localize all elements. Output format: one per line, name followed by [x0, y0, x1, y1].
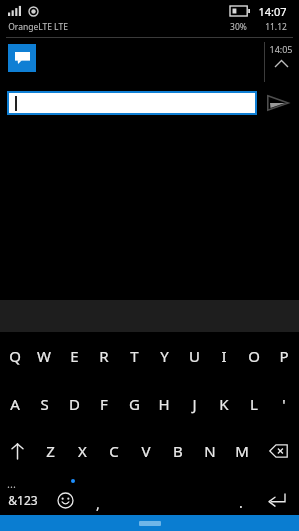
staticText: V	[141, 441, 151, 461]
button[interactable]: Q	[0, 332, 29, 380]
staticText: ,	[96, 494, 100, 513]
button[interactable]: R	[89, 332, 119, 380]
button[interactable]: H	[149, 380, 179, 428]
staticText: A	[10, 394, 20, 414]
staticText: OrangeLTE LTE	[8, 21, 68, 33]
staticText: R	[99, 346, 109, 366]
staticText: I	[221, 346, 227, 366]
staticText: K	[219, 394, 229, 414]
staticText: ...	[7, 476, 16, 491]
staticText: Y	[160, 346, 169, 366]
button[interactable]: V	[130, 428, 162, 473]
staticText: 14:07	[258, 4, 287, 19]
staticText: M	[235, 441, 249, 461]
staticText: T	[130, 346, 139, 366]
button[interactable]	[7, 91, 257, 115]
staticText: F	[100, 394, 108, 414]
button[interactable]: D	[59, 380, 89, 428]
staticText: U	[189, 346, 200, 366]
button[interactable]: Hide keyboard	[139, 521, 161, 526]
button[interactable]: Expand	[269, 43, 293, 67]
button[interactable]: S	[29, 380, 59, 428]
button[interactable]: X	[66, 428, 98, 473]
staticText: G	[129, 394, 140, 414]
button[interactable]: U	[179, 332, 209, 380]
button[interactable]: Backspace	[258, 428, 299, 473]
staticText: .	[239, 493, 243, 512]
staticText: 14:05	[269, 43, 293, 55]
button[interactable]: I	[209, 332, 239, 380]
button[interactable]: '	[269, 380, 299, 428]
button[interactable]: O	[239, 332, 269, 380]
button[interactable]: &123	[0, 485, 46, 515]
staticText: Z	[46, 441, 55, 461]
button[interactable]: G	[119, 380, 149, 428]
button[interactable]: Contact	[8, 44, 36, 72]
button[interactable]: K	[209, 380, 239, 428]
button[interactable]: .	[227, 485, 255, 515]
staticText: B	[173, 441, 183, 461]
button[interactable]: F	[89, 380, 119, 428]
staticText: P	[279, 346, 289, 366]
button[interactable]: Emoji	[46, 485, 84, 515]
staticText: E	[70, 346, 79, 366]
staticText: 11.12	[265, 21, 287, 33]
button[interactable]: Shift	[0, 428, 35, 473]
staticText: W	[37, 346, 51, 366]
staticText: J	[192, 394, 197, 414]
button[interactable]: Enter	[255, 485, 299, 515]
staticText: L	[250, 394, 258, 414]
staticText: H	[158, 394, 170, 414]
button[interactable]: Send	[261, 86, 295, 120]
staticText: &123	[8, 492, 38, 508]
staticText: O	[248, 346, 260, 366]
staticText: S	[40, 394, 49, 414]
button[interactable]: Y	[149, 332, 179, 380]
button[interactable]: J	[179, 380, 209, 428]
button[interactable]: P	[269, 332, 299, 380]
button[interactable]: T	[119, 332, 149, 380]
staticText: '	[282, 394, 286, 414]
button[interactable]: A	[0, 380, 29, 428]
staticText: X	[78, 441, 87, 461]
button[interactable]: E	[59, 332, 89, 380]
button[interactable]: B	[162, 428, 194, 473]
button[interactable]: N	[194, 428, 226, 473]
button[interactable]: ,	[84, 485, 112, 515]
button[interactable]: C	[98, 428, 130, 473]
button[interactable]: W	[29, 332, 59, 380]
button[interactable]: L	[239, 380, 269, 428]
staticText: 30%	[230, 21, 247, 33]
button[interactable]: M	[226, 428, 258, 473]
staticText: C	[109, 441, 119, 461]
staticText: Q	[9, 346, 21, 366]
staticText: N	[204, 441, 216, 461]
staticText: D	[69, 394, 80, 414]
button[interactable]: Z	[35, 428, 66, 473]
